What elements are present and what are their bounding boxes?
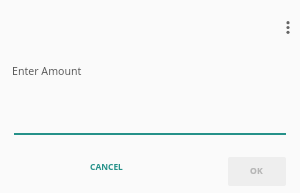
staticText: CANCEL bbox=[90, 161, 123, 172]
staticText: Enter Amount bbox=[12, 64, 82, 78]
button[interactable]: CANCEL bbox=[84, 158, 129, 175]
button[interactable]: More options bbox=[276, 15, 300, 40]
staticText: OK bbox=[250, 165, 264, 177]
button[interactable]: OK bbox=[228, 157, 286, 186]
